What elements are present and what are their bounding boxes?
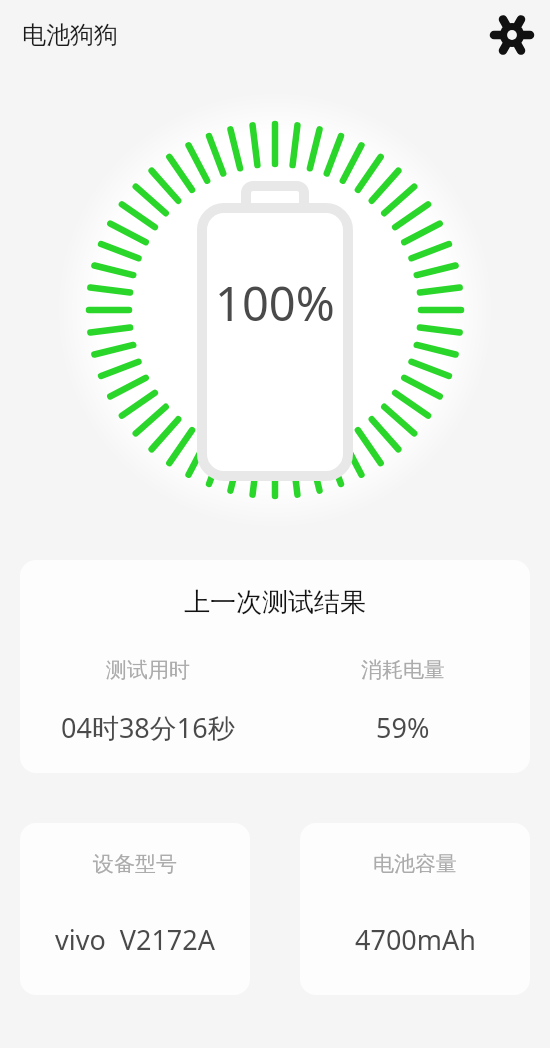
staticText: 59% xyxy=(376,709,430,746)
staticText: 消耗电量 xyxy=(361,657,445,683)
button[interactable]: 电池容量 xyxy=(300,823,530,995)
staticText: 4700mAh xyxy=(355,921,476,958)
staticText: 上一次测试结果 xyxy=(20,586,530,619)
staticText: 电池容量 xyxy=(373,851,457,877)
staticText: vivo V2172A xyxy=(55,921,216,958)
staticText: 电池狗狗 xyxy=(22,20,118,50)
staticText: 04时38分16秒 xyxy=(61,709,235,746)
button[interactable]: 上一次测试结果 xyxy=(20,560,530,773)
staticText: 设备型号 xyxy=(93,851,177,877)
button[interactable]: Settings xyxy=(488,11,536,59)
button[interactable]: 设备型号 xyxy=(20,823,250,995)
staticText: 100% xyxy=(215,271,335,335)
staticText: 测试用时 xyxy=(106,657,190,683)
